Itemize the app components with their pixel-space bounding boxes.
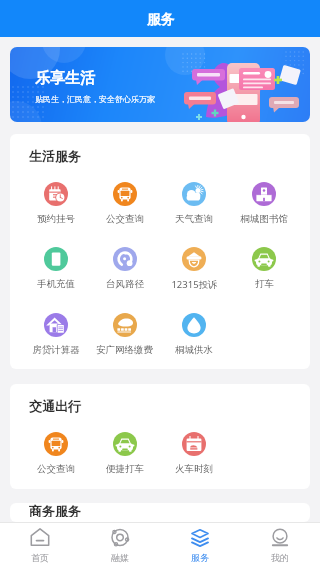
button[interactable]: 乐享生活 — [10, 47, 310, 122]
button[interactable]: 便捷打车 — [90, 432, 159, 475]
staticText: 生活服务 — [29, 148, 81, 164]
staticText: 服务 — [191, 552, 209, 563]
staticText: 桐城图书馆 — [240, 213, 288, 225]
button[interactable]: 融媒 — [80, 523, 160, 568]
button[interactable]: 预约挂号 — [21, 182, 90, 225]
button[interactable]: 桐城图书馆 — [229, 182, 299, 225]
staticText: 公交查询 — [37, 463, 75, 475]
button[interactable]: 手机充值 — [21, 247, 90, 290]
button[interactable]: 台风路径 — [90, 247, 159, 290]
button[interactable]: 公交查询 — [21, 432, 90, 475]
button[interactable]: 12315投诉 — [159, 247, 229, 291]
staticText: 桐城供水 — [175, 344, 213, 356]
staticText: 商务服务 — [29, 503, 81, 517]
staticText: 火车时刻 — [175, 463, 213, 475]
staticText: 12315投诉 — [171, 278, 218, 291]
button[interactable]: 服务 — [160, 523, 240, 568]
button[interactable]: 我的 — [240, 523, 320, 568]
staticText: 天气查询 — [175, 213, 213, 225]
button[interactable]: 天气查询 — [159, 182, 229, 225]
staticText: 安广网络缴费 — [96, 344, 153, 356]
staticText: 我的 — [271, 552, 289, 563]
staticText: 便捷打车 — [106, 463, 144, 475]
staticText: 首页 — [31, 552, 49, 563]
staticText: 预约挂号 — [37, 213, 75, 225]
button[interactable]: 安广网络缴费 — [90, 313, 159, 356]
staticText: 乐享生活 — [35, 69, 95, 88]
staticText: 融媒 — [111, 552, 129, 563]
staticText: 台风路径 — [106, 278, 144, 290]
staticText: 交通出行 — [29, 398, 81, 414]
staticText: 手机充值 — [37, 278, 75, 290]
staticText: 打车 — [255, 278, 274, 290]
staticText: 公交查询 — [106, 213, 144, 225]
button[interactable]: 首页 — [0, 523, 80, 568]
button[interactable]: 打车 — [229, 247, 299, 290]
staticText: 房贷计算器 — [32, 344, 80, 356]
button[interactable]: 火车时刻 — [159, 432, 229, 475]
staticText: 服务 — [147, 11, 174, 28]
button[interactable]: 房贷计算器 — [21, 313, 90, 356]
staticText: 贴民生，汇民意，安全舒心乐万家 — [35, 94, 155, 104]
button[interactable]: 桐城供水 — [159, 313, 229, 356]
button[interactable]: 公交查询 — [90, 182, 159, 225]
